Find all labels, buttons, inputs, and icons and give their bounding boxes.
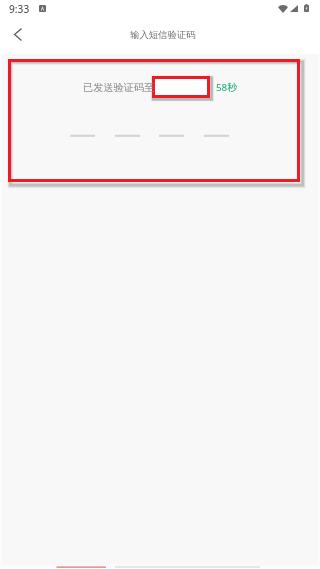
staticText: 9:33 [9, 2, 30, 16]
button[interactable]: Verification code digit 2 [115, 112, 140, 138]
button[interactable]: 58秒 [214, 78, 240, 94]
staticText: 输入短信验证码 [130, 29, 196, 41]
button[interactable]: Verification code digit 4 [204, 112, 229, 138]
button[interactable]: Verification code digit 1 [70, 112, 95, 138]
button[interactable]: Back [1, 18, 33, 50]
staticText: 58秒 [216, 81, 238, 94]
staticText: 已发送验证码至 [83, 81, 155, 94]
button[interactable]: Verification code digit 3 [159, 112, 184, 138]
